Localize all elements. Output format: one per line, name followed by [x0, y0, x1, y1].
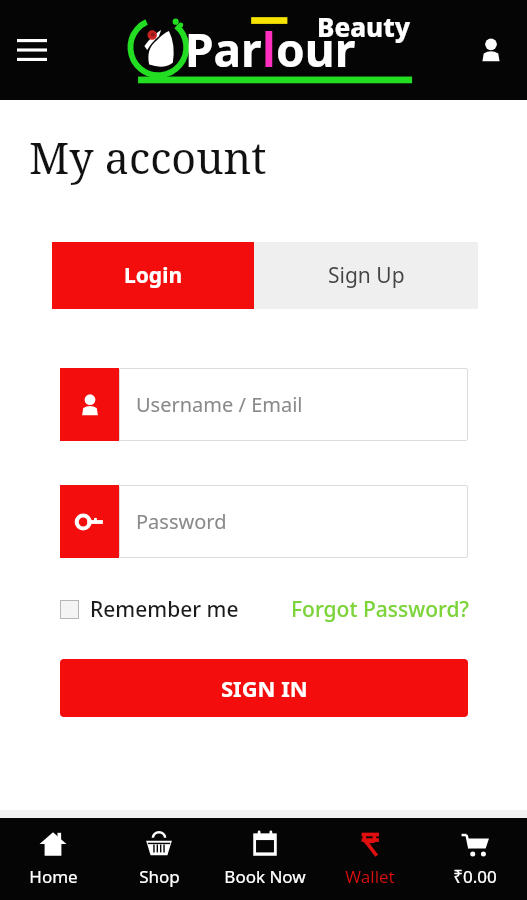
staticText: Username / Email	[136, 391, 303, 418]
staticText: Remember me	[90, 595, 239, 624]
staticText: Password	[136, 508, 227, 535]
button[interactable]: Account	[467, 26, 515, 74]
button[interactable]: Username / Email	[60, 368, 468, 441]
staticText: Par	[185, 18, 262, 81]
staticText: our	[276, 18, 356, 81]
button[interactable]: Password	[60, 485, 468, 558]
button[interactable]: Menu	[8, 26, 56, 74]
button[interactable]: Forgot Password?	[291, 595, 469, 624]
staticText: Login	[124, 261, 183, 290]
button[interactable]: Sign Up	[254, 242, 478, 309]
staticText: My account	[29, 128, 267, 187]
staticText: l	[262, 18, 276, 81]
button[interactable]: SIGN IN	[60, 659, 468, 717]
staticText: Book Now	[224, 865, 306, 888]
staticText: Shop	[139, 865, 180, 888]
button[interactable]: Wallet	[317, 818, 422, 900]
staticText: Beauty	[317, 9, 411, 44]
button[interactable]: Book Now	[212, 818, 317, 900]
staticText: Wallet	[345, 865, 395, 888]
button[interactable]: ₹0.00	[422, 818, 527, 900]
button[interactable]: Shop	[106, 818, 212, 900]
staticText: Forgot Password?	[291, 595, 469, 624]
staticText: SIGN IN	[221, 673, 308, 703]
button[interactable]: Login	[52, 242, 254, 309]
staticText: ₹0.00	[453, 865, 497, 888]
staticText: Sign Up	[328, 261, 405, 290]
button[interactable]: Home	[0, 818, 106, 900]
staticText: Home	[29, 865, 78, 888]
button[interactable]: Remember me	[60, 595, 239, 624]
